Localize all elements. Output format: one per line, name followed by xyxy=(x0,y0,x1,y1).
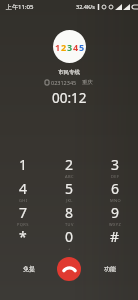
staticText: 02312345 xyxy=(51,79,77,86)
button[interactable]: End call xyxy=(57,257,81,281)
button[interactable]: 9 xyxy=(92,203,138,227)
staticText: 3 xyxy=(111,155,120,174)
button[interactable]: 8 xyxy=(46,203,92,227)
staticText: 功能 xyxy=(104,265,116,273)
staticText: 7 xyxy=(19,203,28,222)
staticText: 1 xyxy=(19,155,28,174)
staticText: JKL xyxy=(66,198,73,203)
staticText: 00:12 xyxy=(52,89,87,107)
staticText: 上午11:05 xyxy=(6,3,34,11)
staticText: + xyxy=(68,246,71,251)
button[interactable]: 4 xyxy=(0,179,46,203)
staticText: ABC xyxy=(65,174,74,179)
button[interactable]: # xyxy=(92,227,138,251)
staticText: 免提 xyxy=(23,265,35,273)
staticText: 4 xyxy=(73,41,79,53)
button[interactable]: 功能 xyxy=(90,257,130,281)
staticText: 4 xyxy=(19,179,28,198)
button[interactable]: 1 xyxy=(0,155,46,179)
staticText: * xyxy=(19,227,27,246)
staticText: 0 xyxy=(65,227,74,246)
staticText: MNO xyxy=(110,198,121,203)
staticText: GHI xyxy=(19,198,28,203)
button[interactable]: 6 xyxy=(92,179,138,203)
staticText: 重庆 xyxy=(82,79,93,86)
staticText: 3 xyxy=(67,41,73,53)
staticText: 5 xyxy=(79,41,85,53)
button[interactable]: 2 xyxy=(46,155,92,179)
staticText: PQRS xyxy=(17,222,29,227)
button[interactable]: 0 xyxy=(46,227,92,251)
staticText: 8 xyxy=(65,203,74,222)
staticText: 2 xyxy=(65,155,74,174)
staticText: 5 xyxy=(65,179,74,198)
staticText: 1 xyxy=(55,41,61,53)
button[interactable]: 免提 xyxy=(9,257,49,281)
staticText: 6 xyxy=(111,179,120,198)
staticText: TUV xyxy=(65,222,74,227)
button[interactable]: * xyxy=(0,227,46,251)
button[interactable]: 3 xyxy=(92,155,138,179)
staticText: WXYZ xyxy=(109,222,122,227)
button[interactable]: 5 xyxy=(46,179,92,203)
button[interactable]: 7 xyxy=(0,203,46,227)
staticText: 32.4K/s xyxy=(76,3,95,10)
staticText: DEF xyxy=(111,174,120,179)
staticText: 2 xyxy=(61,41,67,53)
staticText: # xyxy=(110,227,120,246)
staticText: 9 xyxy=(111,203,120,222)
staticText: 市民专线 xyxy=(58,69,80,76)
